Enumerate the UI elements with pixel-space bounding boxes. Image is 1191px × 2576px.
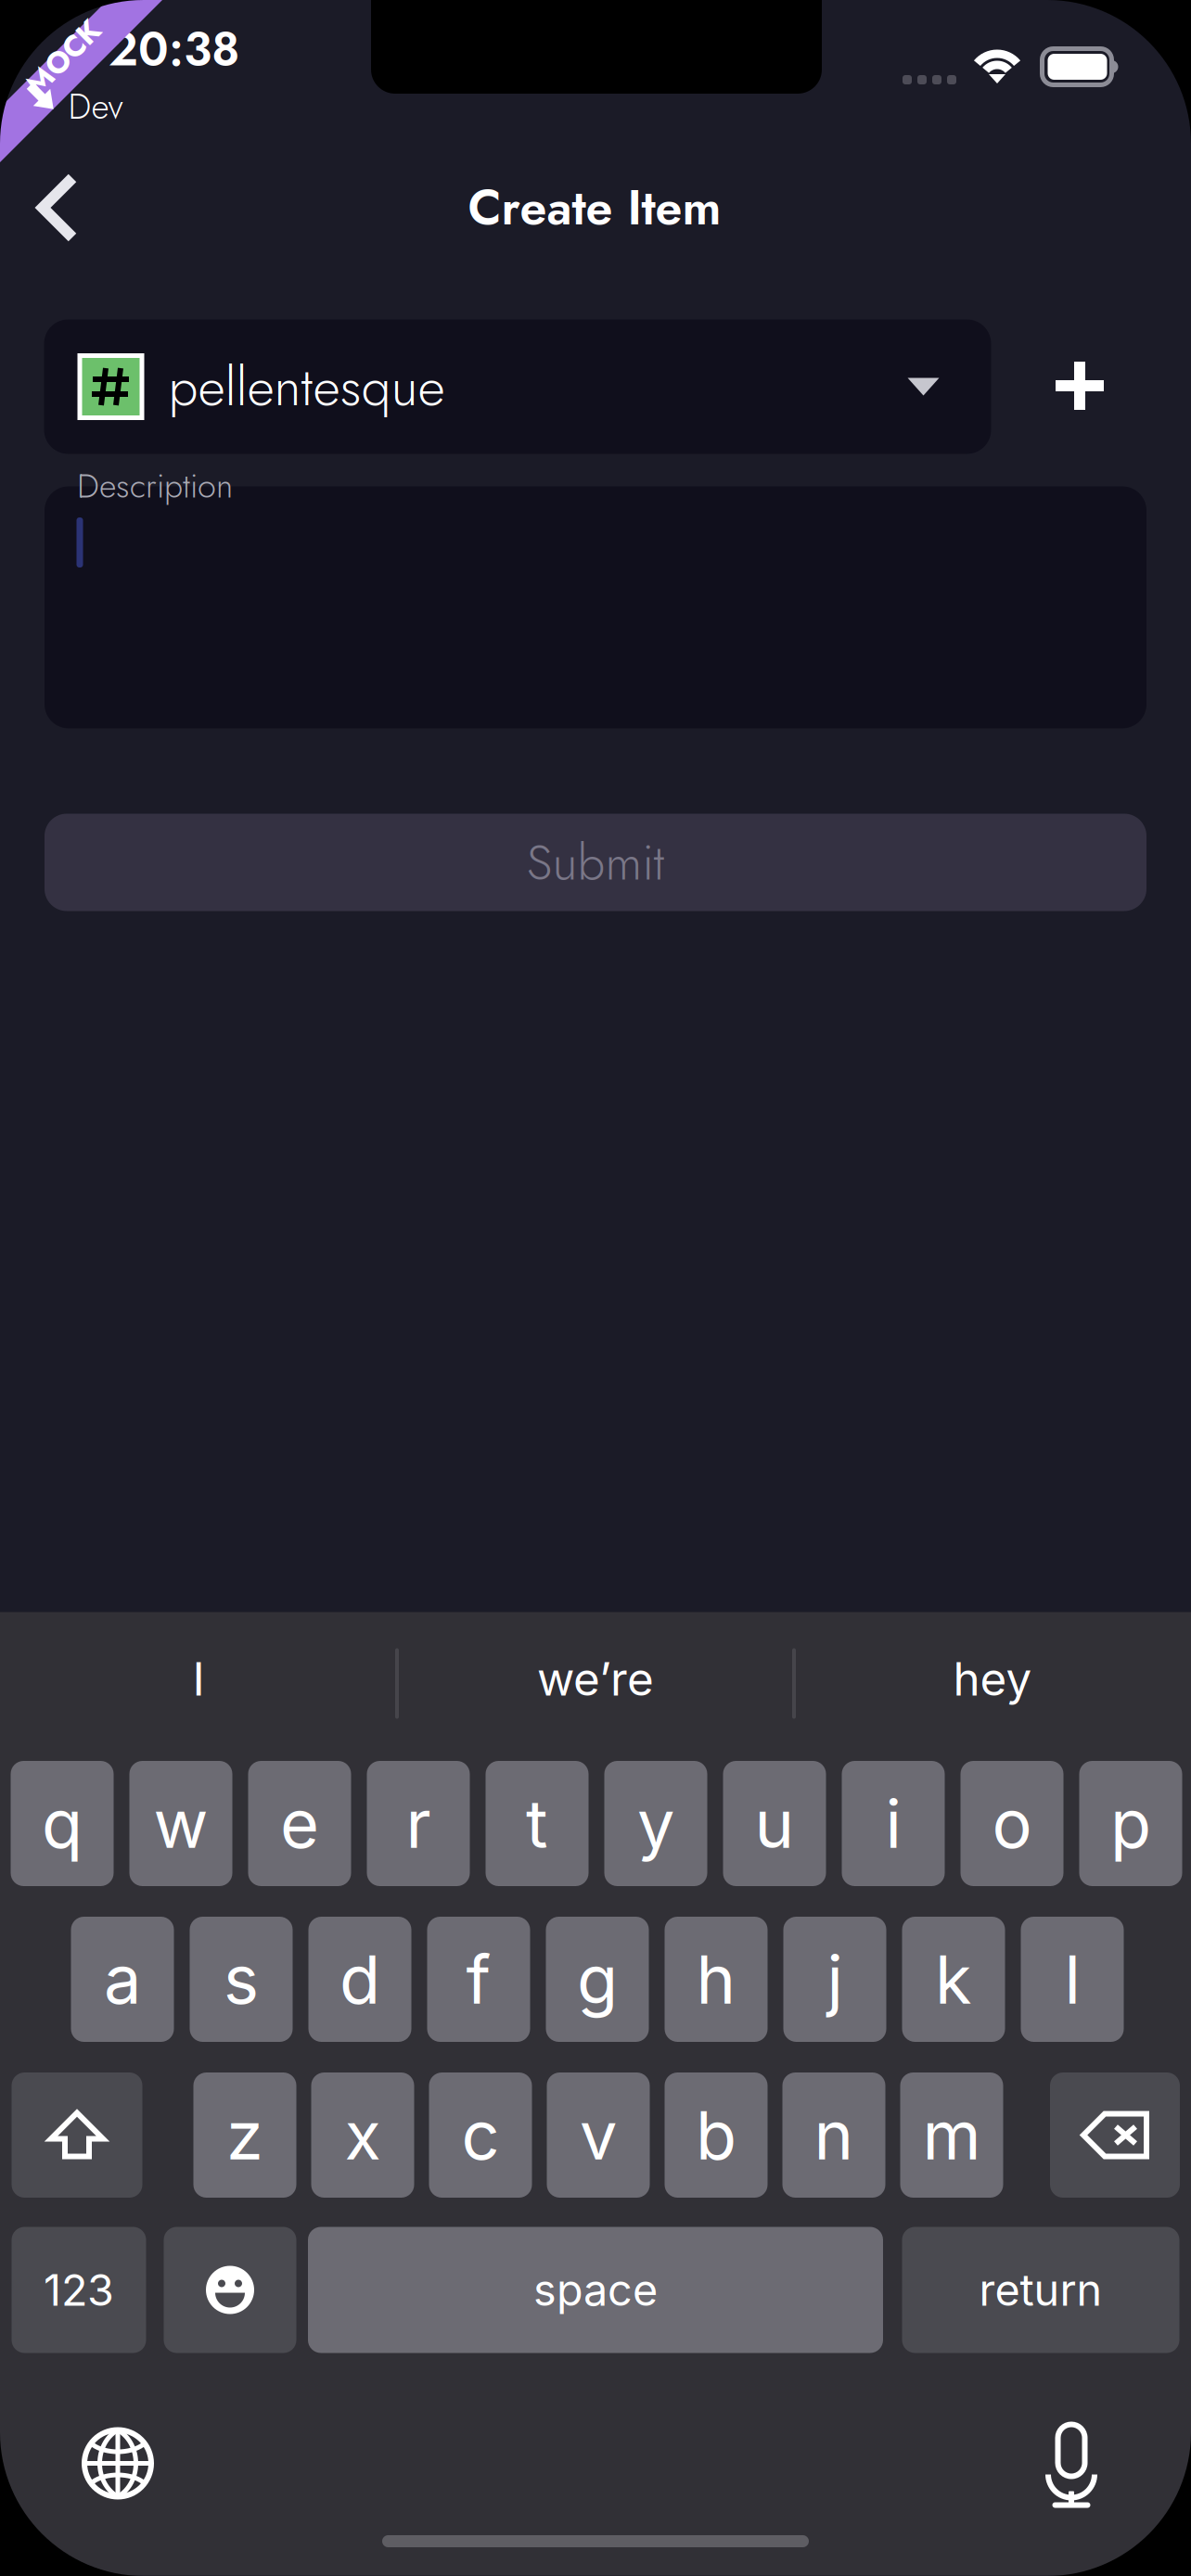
- button[interactable]: u: [723, 1761, 826, 1886]
- button[interactable]: q: [11, 1761, 114, 1886]
- button[interactable]: t: [486, 1761, 589, 1886]
- staticText: v: [580, 2095, 617, 2175]
- button[interactable]: j: [783, 1917, 886, 2042]
- staticText: 123: [44, 2264, 114, 2316]
- staticText: g: [577, 1939, 618, 2020]
- button[interactable]: l: [1021, 1917, 1124, 2042]
- button[interactable]: pellentesque: [44, 319, 991, 454]
- button[interactable]: k: [902, 1917, 1005, 2042]
- staticText: r: [406, 1783, 431, 1864]
- staticText: i: [885, 1783, 901, 1864]
- staticText: Dev: [68, 82, 123, 132]
- button[interactable]: p: [1079, 1761, 1182, 1886]
- button[interactable]: Submit: [45, 814, 1146, 911]
- staticText: l: [1064, 1939, 1080, 2020]
- button[interactable]: i: [842, 1761, 945, 1886]
- button[interactable]: a: [71, 1917, 174, 2042]
- staticText: Description: [77, 462, 233, 510]
- staticText: w: [154, 1783, 208, 1864]
- button[interactable]: Delete: [1050, 2072, 1180, 2198]
- staticText: 20:38: [109, 15, 240, 83]
- button[interactable]: v: [547, 2072, 650, 2198]
- button[interactable]: e: [248, 1761, 351, 1886]
- button[interactable]: r: [367, 1761, 470, 1886]
- button[interactable]: g: [546, 1917, 649, 2042]
- staticText: I: [192, 1651, 205, 1707]
- button[interactable]: we’re: [401, 1616, 790, 1741]
- staticText: b: [696, 2095, 736, 2175]
- staticText: a: [104, 1939, 141, 2020]
- button[interactable]: 123: [12, 2227, 146, 2353]
- staticText: Create Item: [468, 173, 721, 242]
- button[interactable]: x: [311, 2072, 414, 2198]
- button[interactable]: w: [129, 1761, 232, 1886]
- staticText: Submit: [526, 827, 665, 898]
- staticText: x: [345, 2095, 381, 2175]
- staticText: p: [1110, 1783, 1151, 1864]
- button[interactable]: c: [429, 2072, 532, 2198]
- button[interactable]: Emoji: [164, 2227, 296, 2353]
- button[interactable]: z: [193, 2072, 296, 2198]
- staticText: d: [339, 1939, 380, 2020]
- staticText: h: [696, 1939, 736, 2020]
- staticText: space: [533, 2264, 658, 2316]
- button[interactable]: y: [604, 1761, 707, 1886]
- button[interactable]: I: [4, 1616, 393, 1741]
- button[interactable]: Dictate: [1016, 2408, 1127, 2519]
- button[interactable]: m: [900, 2072, 1003, 2198]
- staticText: u: [755, 1783, 794, 1864]
- staticText: MOCK: [17, 36, 109, 79]
- button[interactable]: space: [308, 2227, 883, 2353]
- staticText: pellentesque: [168, 348, 445, 425]
- button[interactable]: Next keyboard: [62, 2408, 173, 2519]
- staticText: s: [224, 1939, 259, 2020]
- button[interactable]: h: [665, 1917, 768, 2042]
- button[interactable]: Back: [2, 152, 113, 263]
- staticText: f: [466, 1939, 491, 2020]
- button[interactable]: return: [902, 2227, 1179, 2353]
- button[interactable]: n: [782, 2072, 885, 2198]
- button[interactable]: o: [960, 1761, 1063, 1886]
- staticText: c: [461, 2095, 499, 2175]
- button[interactable]: Add category: [1024, 330, 1135, 441]
- button[interactable]: b: [665, 2072, 768, 2198]
- staticText: m: [922, 2095, 981, 2175]
- staticText: t: [526, 1783, 548, 1864]
- button[interactable]: f: [427, 1917, 530, 2042]
- staticText: z: [226, 2095, 263, 2175]
- staticText: we’re: [537, 1651, 654, 1707]
- staticText: n: [814, 2095, 854, 2175]
- button[interactable]: d: [308, 1917, 411, 2042]
- button[interactable]: s: [190, 1917, 293, 2042]
- staticText: hey: [953, 1651, 1032, 1707]
- staticText: k: [935, 1939, 972, 2020]
- staticText: e: [280, 1783, 319, 1864]
- staticText: return: [979, 2264, 1102, 2316]
- staticText: o: [992, 1783, 1032, 1864]
- button[interactable]: hey: [798, 1616, 1187, 1741]
- button[interactable]: Shift: [12, 2072, 142, 2198]
- staticText: q: [42, 1783, 83, 1864]
- staticText: j: [827, 1939, 843, 2020]
- staticText: y: [637, 1783, 674, 1864]
